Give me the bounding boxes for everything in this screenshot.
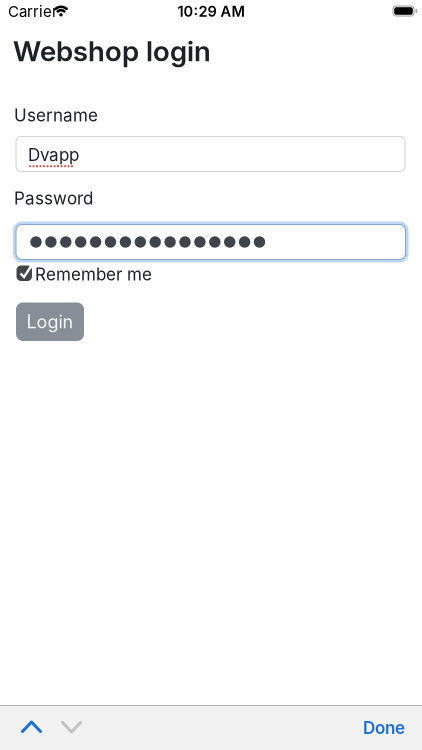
staticText: Remember me [35,264,152,285]
staticText: Done [363,717,405,738]
button[interactable]: Password text field [13,221,408,262]
staticText: Dvapp [28,144,79,165]
staticText: 10:29 AM [177,2,244,20]
button[interactable]: Done [363,717,405,738]
button[interactable]: Username text field [15,136,405,172]
button[interactable]: Next field [61,721,82,734]
button[interactable]: Previous field [21,720,42,733]
staticText: Username [14,105,98,126]
staticText: Webshop login [13,34,211,68]
staticText: Login [26,311,73,333]
staticText: Password [14,188,93,209]
button[interactable]: Remember me [16,264,133,285]
button[interactable]: Login [16,302,84,341]
staticText: Carrier [8,2,58,21]
